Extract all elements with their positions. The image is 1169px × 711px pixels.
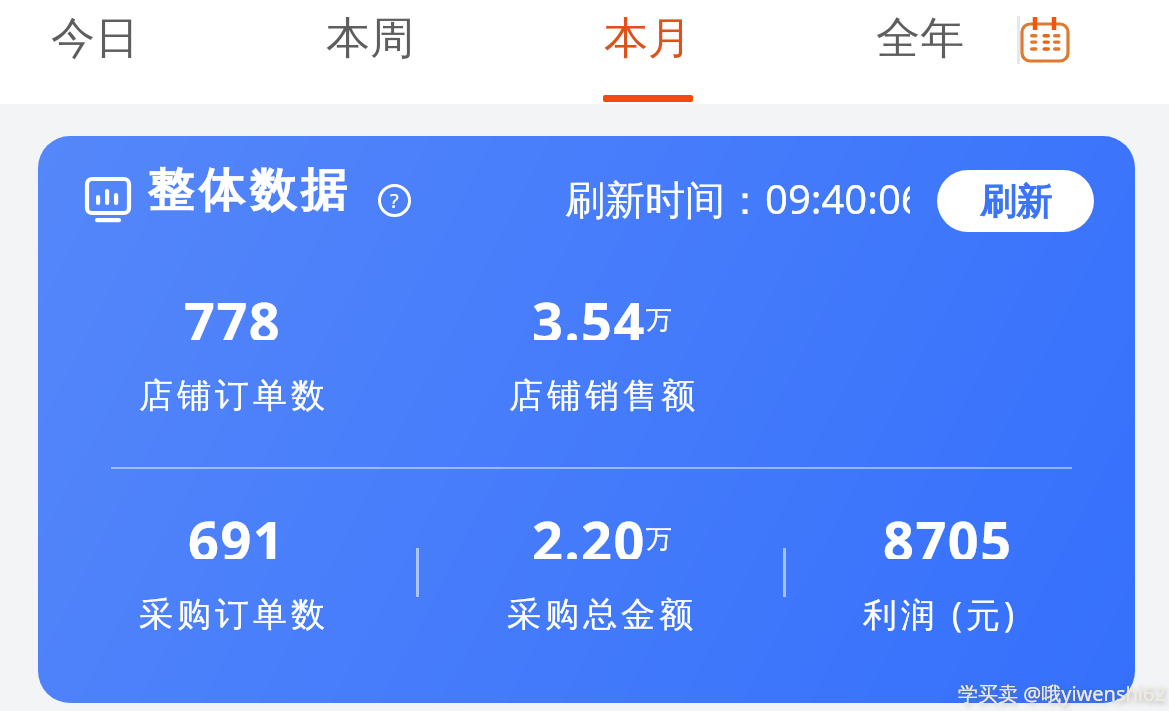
staticText: ?: [390, 187, 399, 214]
button[interactable]: 刷新: [937, 170, 1094, 232]
staticText: 刷新时间：09:40:06: [565, 171, 910, 226]
staticText: 691: [188, 503, 286, 559]
staticText: 今日: [51, 11, 139, 66]
staticText: 学买卖 @哦yiwenshi62: [958, 680, 1166, 707]
button[interactable]: 本月: [588, 8, 708, 68]
staticText: 万: [646, 304, 672, 337]
button[interactable]: 本周: [310, 8, 430, 68]
staticText: 刷新: [980, 179, 1052, 224]
staticText: 778: [184, 284, 282, 340]
staticText: 3.54: [532, 284, 646, 340]
staticText: 2.20: [532, 503, 646, 559]
staticText: 本月: [604, 11, 692, 66]
staticText: 店铺销售额: [507, 374, 697, 417]
staticText: 利润 (元): [863, 591, 1019, 637]
staticText: 采购订单数: [137, 593, 327, 636]
staticText: 全年: [876, 11, 964, 66]
staticText: 整体数据: [145, 162, 349, 218]
staticText: 8705: [883, 503, 1013, 559]
staticText: 店铺订单数: [137, 374, 327, 417]
button[interactable]: 今日: [35, 8, 155, 68]
staticText: 本周: [326, 11, 414, 66]
button[interactable]: ?: [378, 184, 411, 217]
staticText: 采购总金额: [505, 593, 695, 636]
button[interactable]: [1016, 12, 1076, 72]
staticText: 万: [646, 523, 672, 556]
button[interactable]: 全年: [860, 8, 980, 68]
